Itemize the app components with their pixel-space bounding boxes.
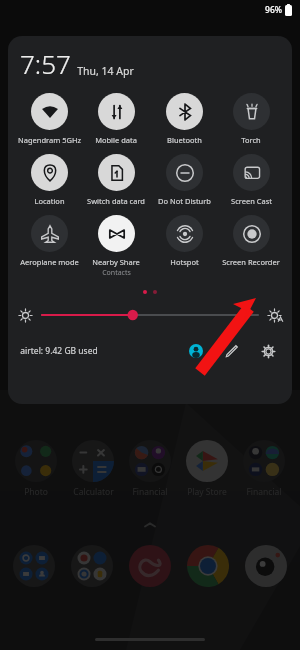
staticText: Screen Recorder bbox=[222, 257, 280, 267]
staticText: Torch bbox=[241, 135, 261, 145]
button[interactable]: Mobile data bbox=[83, 93, 149, 145]
staticText: 96% bbox=[265, 4, 282, 16]
button[interactable]: Financial bbox=[238, 440, 290, 498]
staticText: Financial bbox=[246, 486, 282, 498]
staticText: Hotspot bbox=[170, 257, 199, 267]
staticText: Photo bbox=[24, 486, 48, 498]
button[interactable]: Nagendram 5GHz bbox=[16, 93, 82, 145]
staticText: Thu, 14 Apr bbox=[77, 64, 134, 78]
staticText: Mobile data bbox=[95, 135, 137, 145]
button[interactable]: Photo bbox=[10, 440, 62, 498]
button[interactable]: Hotspot bbox=[151, 215, 217, 267]
button[interactable] bbox=[42, 306, 258, 324]
button[interactable]: Location bbox=[16, 154, 82, 206]
button[interactable]: Edit tiles bbox=[220, 339, 244, 363]
button[interactable]: Bluetooth bbox=[151, 93, 217, 145]
button[interactable] bbox=[244, 544, 288, 588]
staticText: Play Store bbox=[187, 486, 227, 498]
button[interactable] bbox=[186, 544, 230, 588]
button[interactable]: Financial bbox=[124, 440, 176, 498]
staticText: Location bbox=[34, 196, 65, 206]
button[interactable]: Switch data card bbox=[83, 154, 149, 206]
staticText: Do Not Disturb bbox=[158, 196, 211, 206]
button[interactable]: Settings bbox=[256, 339, 280, 363]
button[interactable] bbox=[128, 544, 172, 588]
button[interactable]: Calculator bbox=[67, 440, 119, 498]
staticText: Screen Cast bbox=[231, 196, 272, 206]
button[interactable]: Do Not Disturb bbox=[151, 154, 217, 206]
button[interactable]: Aeroplane mode bbox=[16, 215, 82, 267]
button[interactable]: User account bbox=[184, 339, 208, 363]
button[interactable] bbox=[70, 544, 114, 588]
staticText: Calculator bbox=[73, 486, 114, 498]
staticText: Switch data card bbox=[87, 196, 145, 206]
staticText: airtel: 9.42 GB used bbox=[20, 345, 98, 357]
staticText: Nearby Share bbox=[92, 257, 140, 267]
staticText: Nagendram 5GHz bbox=[18, 135, 81, 145]
staticText: Aeroplane mode bbox=[20, 257, 79, 267]
button[interactable]: Screen Cast bbox=[218, 154, 284, 206]
button[interactable]: Torch bbox=[218, 93, 284, 145]
staticText: Financial bbox=[132, 486, 168, 498]
button[interactable]: Screen Recorder bbox=[218, 215, 284, 267]
button[interactable] bbox=[12, 544, 56, 588]
button[interactable]: Nearby Share bbox=[83, 215, 149, 278]
staticText: Contacts bbox=[102, 268, 131, 278]
staticText: 7:57 bbox=[20, 46, 71, 81]
button[interactable]: Play Store bbox=[181, 440, 233, 498]
staticText: Bluetooth bbox=[167, 135, 202, 145]
